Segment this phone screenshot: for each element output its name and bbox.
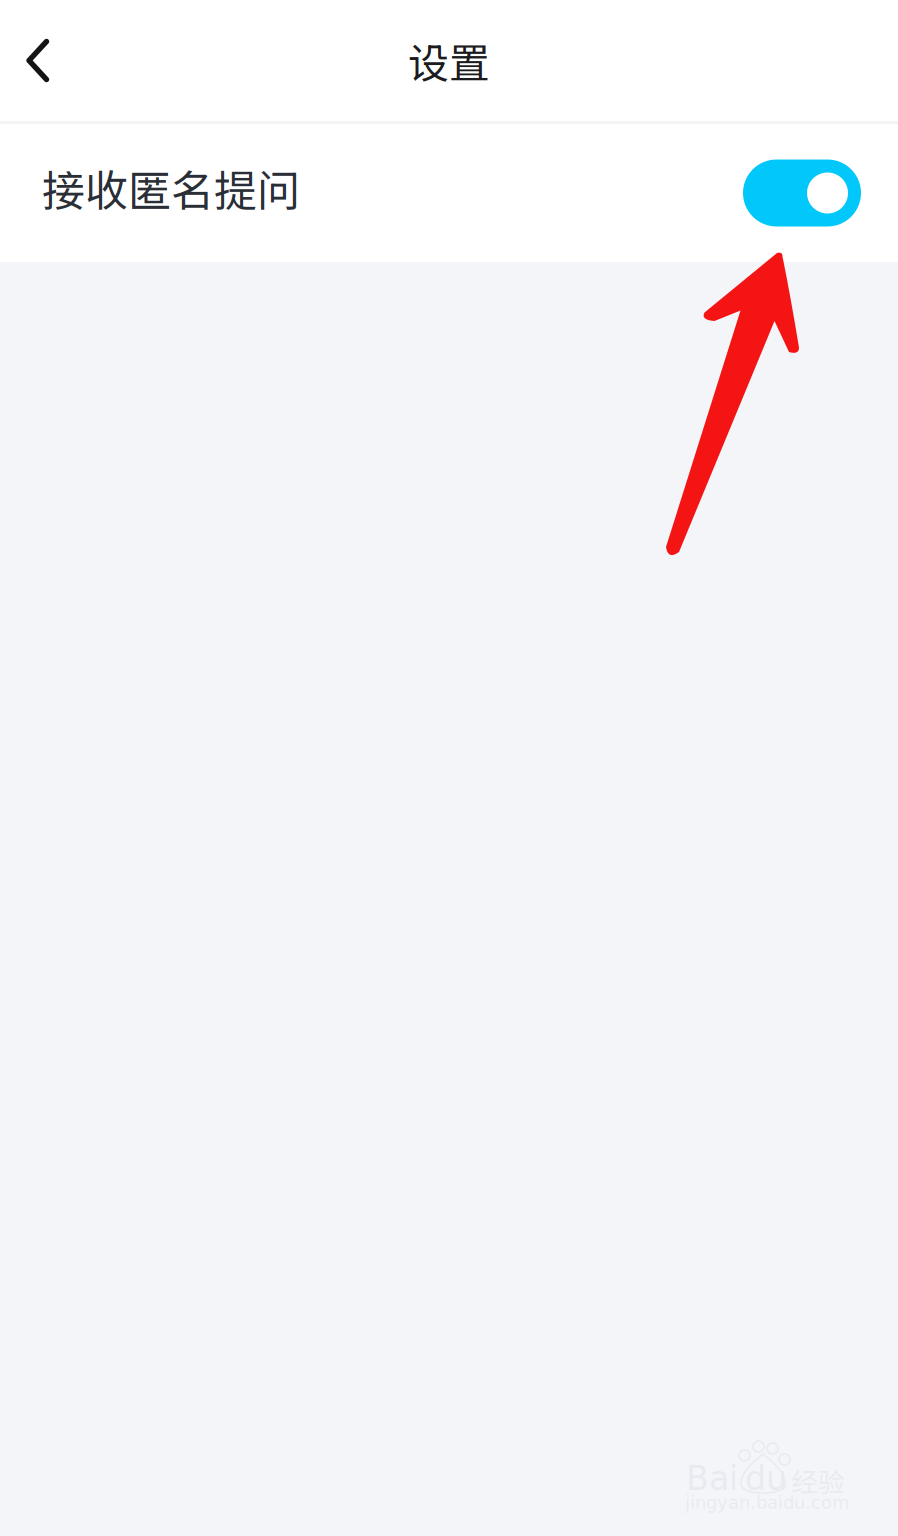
button[interactable]: Back <box>0 10 78 110</box>
button[interactable]: 接收匿名提问 <box>0 124 898 262</box>
staticText: 接收匿名提问 <box>42 157 300 219</box>
staticText: Bai <box>686 1459 738 1498</box>
staticText: jingyan.baidu.com <box>685 1492 850 1513</box>
staticText: du <box>745 1459 787 1498</box>
staticText: 设置 <box>408 31 490 90</box>
staticText: 经验 <box>791 1461 845 1500</box>
button[interactable]: 接收匿名提问 <box>743 159 861 226</box>
